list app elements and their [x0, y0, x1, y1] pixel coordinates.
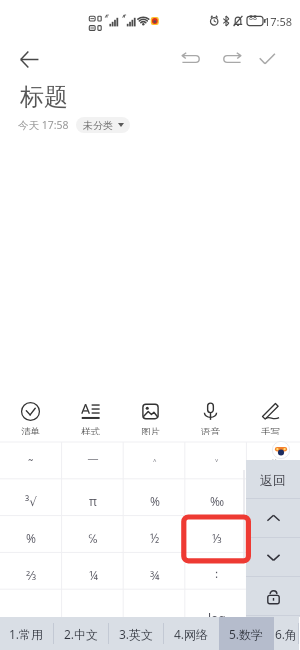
staticText: ‥ — [28, 610, 35, 626]
button[interactable]: % — [124, 482, 186, 519]
staticText: 今天 17:58 — [18, 118, 69, 132]
staticText: 样式 — [81, 426, 100, 435]
staticText: ˄ — [153, 456, 157, 472]
staticText: 6.角 — [275, 626, 298, 642]
staticText: ³√ — [25, 493, 37, 509]
staticText: 2.中文 — [64, 626, 99, 642]
button[interactable]: Key — [246, 538, 300, 577]
staticText: · — [91, 610, 95, 626]
button[interactable]: ⅓ — [186, 519, 248, 556]
button[interactable]: ³√ — [0, 482, 62, 519]
button[interactable]: 返回 — [246, 460, 300, 499]
button[interactable]: ⋯ — [124, 599, 186, 636]
staticText: 17:58 — [264, 14, 293, 29]
staticText: 清单 — [21, 426, 40, 435]
staticText: 4.网络 — [174, 626, 209, 642]
staticText: 未分类 — [83, 119, 113, 132]
button[interactable]: ¼ — [248, 519, 300, 556]
button[interactable]: Back — [12, 42, 46, 76]
staticText: 图片 — [141, 426, 160, 435]
staticText: ˜ — [28, 456, 34, 472]
button[interactable]: Done — [251, 43, 283, 75]
button[interactable]: ¾ — [124, 556, 186, 593]
button[interactable]: 2.中文 — [54, 617, 109, 650]
button[interactable]: ∶ — [186, 556, 248, 593]
staticText: 1.常用 — [9, 626, 44, 642]
staticText: ¾ — [150, 567, 160, 583]
button[interactable]: ⅔ — [0, 556, 62, 593]
button[interactable]: ￣ — [62, 445, 124, 482]
staticText: 标题 — [20, 82, 68, 112]
staticText: 5.数学 — [229, 626, 264, 642]
button[interactable]: Key — [246, 577, 300, 616]
staticText: ℅ — [88, 530, 98, 546]
button[interactable]: ˘ — [248, 445, 300, 482]
button[interactable]: ‰ — [186, 482, 248, 519]
button[interactable]: Undo — [176, 43, 208, 75]
button[interactable]: 手写 — [240, 399, 300, 435]
staticText: ∷ — [270, 568, 278, 582]
staticText: ⅔ — [26, 567, 37, 583]
staticText: 3.英文 — [119, 626, 154, 642]
button[interactable]: 图片 — [120, 399, 180, 435]
button[interactable]: log — [186, 599, 248, 636]
button[interactable]: 5.数学 — [219, 617, 274, 650]
staticText: % — [26, 530, 36, 546]
button[interactable]: Key — [246, 499, 300, 538]
button[interactable]: ˅ — [186, 445, 248, 482]
staticText: ∵ — [270, 494, 278, 508]
staticText: 手写 — [261, 426, 280, 435]
button[interactable]: ln — [248, 599, 300, 636]
button[interactable]: Redo — [215, 43, 247, 75]
button[interactable]: ‥ — [0, 599, 62, 636]
button[interactable]: 未分类 — [76, 117, 130, 133]
staticText: ⋯ — [149, 611, 161, 625]
button[interactable]: ∵ — [248, 482, 300, 519]
staticText: ½ — [150, 530, 160, 546]
button[interactable]: 6.角 — [274, 617, 299, 650]
staticText: 返回 — [260, 472, 286, 488]
staticText: ‰ — [210, 493, 225, 509]
staticText: ˅ — [215, 456, 219, 472]
button[interactable]: ˄ — [124, 445, 186, 482]
button[interactable]: π — [62, 482, 124, 519]
button[interactable]: 语音 — [180, 399, 240, 435]
button[interactable]: ∷ — [248, 556, 300, 593]
button[interactable]: 清单 — [0, 399, 60, 435]
button[interactable]: · — [62, 599, 124, 636]
staticText: ln — [269, 610, 280, 626]
button[interactable]: 4.网络 — [164, 617, 219, 650]
button[interactable]: ˜ — [0, 445, 62, 482]
staticText: log — [208, 610, 226, 626]
staticText: π — [89, 493, 97, 509]
staticText: ￣ — [87, 456, 99, 471]
staticText: ˘ — [272, 456, 277, 472]
staticText: ¼ — [270, 530, 279, 546]
button[interactable]: 1.常用 — [0, 617, 54, 650]
button[interactable]: ¼ — [62, 556, 124, 593]
button[interactable]: ½ — [124, 519, 186, 556]
button[interactable]: 3.英文 — [109, 617, 164, 650]
button[interactable]: 样式 — [60, 399, 120, 435]
staticText: ⅓ — [212, 530, 222, 546]
staticText: % — [150, 493, 160, 509]
button[interactable]: % — [0, 519, 62, 556]
staticText: 语音 — [201, 426, 220, 435]
staticText: 88 — [249, 13, 258, 23]
staticText: ¼ — [89, 567, 98, 583]
staticText: ∶ — [215, 568, 219, 582]
button[interactable]: ℅ — [62, 519, 124, 556]
